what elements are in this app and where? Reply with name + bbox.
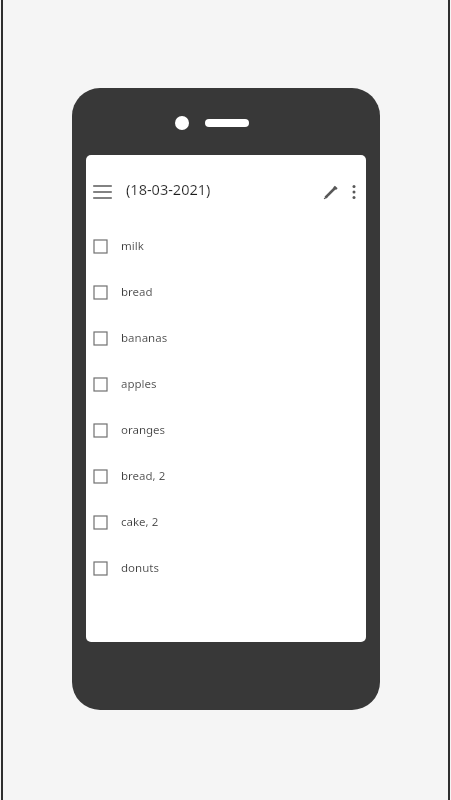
button[interactable]: donuts (86, 545, 366, 591)
button[interactable]: bread, 2 (86, 453, 366, 499)
staticText: milk (121, 238, 144, 254)
button[interactable]: cake, 2 (86, 499, 366, 545)
staticText: oranges (121, 422, 166, 438)
button[interactable]: Menu (86, 177, 118, 207)
button[interactable]: More options (342, 176, 366, 208)
staticText: donuts (121, 560, 159, 576)
button[interactable]: bananas (86, 315, 366, 361)
staticText: bananas (121, 330, 168, 346)
button[interactable]: milk (86, 223, 366, 269)
button[interactable]: Edit (314, 176, 346, 208)
staticText: bread (121, 284, 153, 300)
staticText: apples (121, 376, 157, 392)
button[interactable]: oranges (86, 407, 366, 453)
button[interactable]: apples (86, 361, 366, 407)
staticText: bread, 2 (121, 468, 166, 484)
staticText: cake, 2 (121, 514, 159, 530)
staticText: (18-03-2021) (126, 179, 211, 199)
button[interactable]: bread (86, 269, 366, 315)
